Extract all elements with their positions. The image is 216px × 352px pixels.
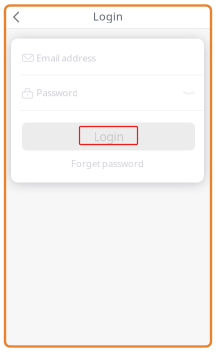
staticText: Forget password: [71, 157, 144, 170]
button[interactable]: Back: [5, 5, 27, 28]
staticText: Email address: [36, 52, 95, 64]
staticText: Password: [36, 86, 78, 99]
staticText: Login: [93, 128, 123, 144]
button[interactable]: Login: [22, 122, 195, 150]
button[interactable]: Show password: [180, 84, 198, 102]
button[interactable]: Forget password: [11, 154, 204, 172]
staticText: Login: [93, 9, 123, 23]
